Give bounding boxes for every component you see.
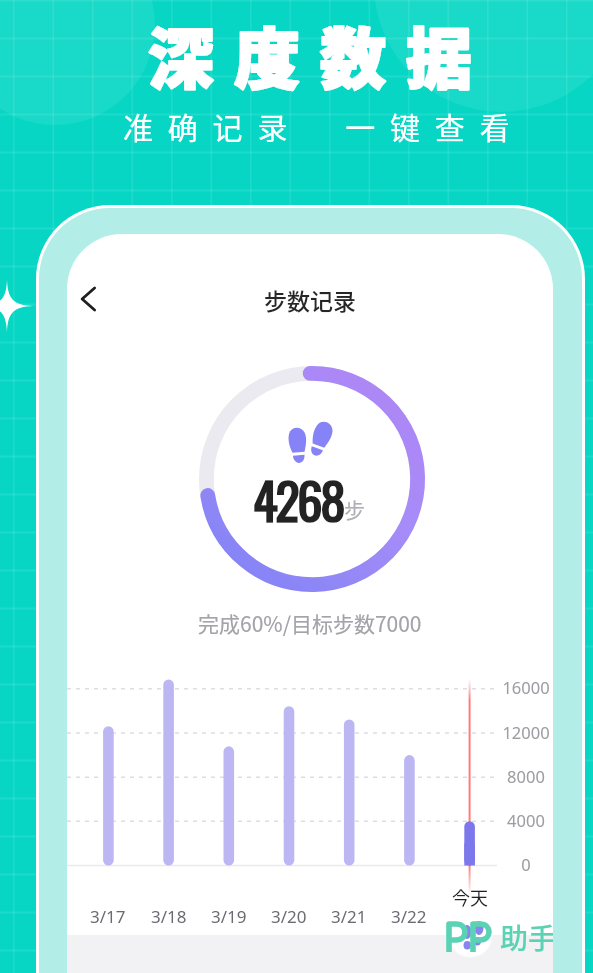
staticText: 深度数据 — [148, 6, 492, 102]
staticText: 3/17 — [90, 905, 126, 928]
staticText: 3/21 — [331, 905, 367, 928]
staticText: 今天 — [452, 884, 488, 910]
staticText: 16000 — [502, 676, 550, 698]
staticText: 3/19 — [211, 905, 247, 928]
staticText: 8000 — [507, 765, 545, 787]
staticText: 0 — [521, 853, 531, 875]
staticText: 4000 — [507, 809, 545, 831]
staticText: 3/20 — [271, 905, 307, 928]
staticText: 深度数据 — [148, 6, 492, 102]
staticText: 完成60%/目标步数7000 — [198, 608, 422, 638]
staticText: 3/22 — [391, 905, 427, 928]
staticText: 助手 — [500, 917, 553, 958]
staticText: 3/18 — [151, 905, 187, 928]
staticText: 准确记录 一键查看 — [123, 104, 525, 147]
staticText: 4268 — [253, 461, 344, 537]
staticText: 步数记录 — [264, 283, 356, 316]
staticText: 步 — [344, 494, 365, 524]
staticText: 12000 — [502, 721, 550, 743]
button[interactable]: Back — [67, 275, 113, 323]
